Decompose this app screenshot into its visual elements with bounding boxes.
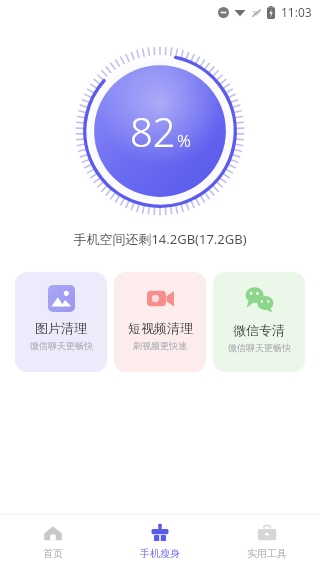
staticText: 微信聊天更畅快 [228, 342, 291, 353]
staticText: 微信聊天更畅快 [30, 340, 93, 351]
button[interactable]: 图片清理 [15, 272, 107, 372]
staticText: 11:03 [281, 4, 312, 20]
staticText: 手机空间还剩14.2GB(17.2GB) [0, 230, 320, 248]
staticText: % [177, 129, 191, 152]
button[interactable]: 微信专清 [213, 272, 305, 372]
staticText: 微信专清 [233, 322, 285, 338]
staticText: 短视频清理 [128, 320, 193, 336]
staticText: 刷视频更快速 [133, 340, 187, 351]
staticText: 82 [130, 104, 176, 158]
other: 首页 [43, 523, 63, 543]
button[interactable]: 短视频清理 [114, 272, 206, 372]
staticText: 首页 [43, 547, 63, 560]
staticText: 实用工具 [247, 547, 287, 560]
button[interactable]: 首页 [0, 514, 106, 568]
button[interactable]: 手机瘦身 [106, 514, 213, 568]
other: 实用工具 [257, 523, 277, 543]
staticText: 手机瘦身 [140, 547, 180, 560]
other: 手机瘦身 [150, 523, 170, 543]
staticText: 图片清理 [35, 320, 87, 336]
button[interactable]: 实用工具 [213, 514, 320, 568]
